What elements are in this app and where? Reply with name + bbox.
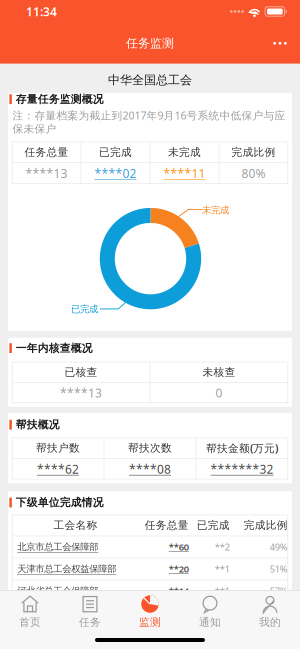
staticText: **14 — [169, 585, 189, 597]
staticText: 帮扶金额(万元) — [206, 441, 278, 455]
staticText: 帮扶户数 — [36, 441, 80, 455]
staticText: 未完成 — [168, 146, 201, 159]
staticText: ****13 — [60, 385, 102, 401]
staticText: 河北省总工会保障部 — [17, 585, 98, 597]
staticText: 完成比例 — [232, 146, 276, 159]
staticText: 我的 — [259, 615, 281, 629]
staticText: **60 — [169, 541, 189, 553]
staticText: **2 — [215, 541, 230, 553]
staticText: **1 — [215, 563, 230, 575]
button[interactable]: 北京市总工会保障部 — [12, 536, 288, 558]
staticText: 一年内核查概况 — [16, 341, 93, 355]
staticText: 11:34 — [26, 3, 57, 19]
staticText: 已核查 — [64, 365, 97, 379]
staticText: 51% — [270, 563, 288, 575]
staticText: ****62 — [37, 461, 79, 477]
staticText: 通知 — [199, 615, 221, 629]
staticText: 未核查 — [203, 365, 236, 379]
staticText: 下级单位完成情况 — [16, 496, 104, 509]
staticText: 存量任务监测概况 — [16, 93, 104, 106]
button[interactable]: 监测 — [120, 591, 180, 633]
staticText: 首页 — [19, 615, 41, 629]
staticText: 工会名称 — [53, 519, 97, 532]
staticText: 已完成 — [99, 146, 132, 159]
staticText: **1 — [215, 585, 230, 597]
staticText: 任务监测 — [126, 36, 174, 51]
staticText: 中华全国总工会 — [108, 73, 192, 87]
staticText: 已完成 — [197, 519, 230, 532]
staticText: 帮扶次数 — [128, 441, 172, 455]
staticText: 0 — [216, 385, 223, 401]
staticText: 未完成 — [202, 204, 229, 216]
staticText: ****13 — [25, 165, 67, 181]
staticText: ****11 — [163, 165, 205, 181]
button[interactable]: 天津市总工会权益保障部 — [12, 558, 288, 580]
staticText: *******32 — [211, 461, 274, 477]
staticText: 49% — [270, 541, 288, 553]
button[interactable]: 河北省总工会保障部 — [12, 580, 288, 602]
staticText: 注：存量档案为截止到2017年9月16号系统中低保户与应保未保户 — [12, 108, 285, 135]
staticText: 帮扶概况 — [16, 418, 60, 431]
button[interactable]: 更多 — [260, 24, 300, 62]
staticText: 完成比例 — [244, 519, 288, 532]
button[interactable]: 任务 — [60, 591, 120, 633]
staticText: 57% — [270, 585, 288, 597]
staticText: 80% — [242, 165, 266, 181]
button[interactable]: 通知 — [180, 591, 240, 633]
staticText: 任务总量 — [24, 146, 68, 159]
staticText: 天津市总工会权益保障部 — [17, 563, 116, 575]
staticText: **20 — [169, 563, 189, 575]
staticText: ****08 — [129, 461, 171, 477]
button[interactable]: 我的 — [240, 591, 300, 633]
staticText: 任务 — [79, 615, 101, 629]
staticText: 监测 — [139, 615, 161, 629]
staticText: ****02 — [94, 165, 136, 181]
button[interactable]: 首页 — [0, 591, 60, 633]
staticText: 北京市总工会保障部 — [17, 541, 98, 553]
staticText: 已完成 — [71, 303, 98, 315]
staticText: 任务总量 — [145, 519, 189, 532]
